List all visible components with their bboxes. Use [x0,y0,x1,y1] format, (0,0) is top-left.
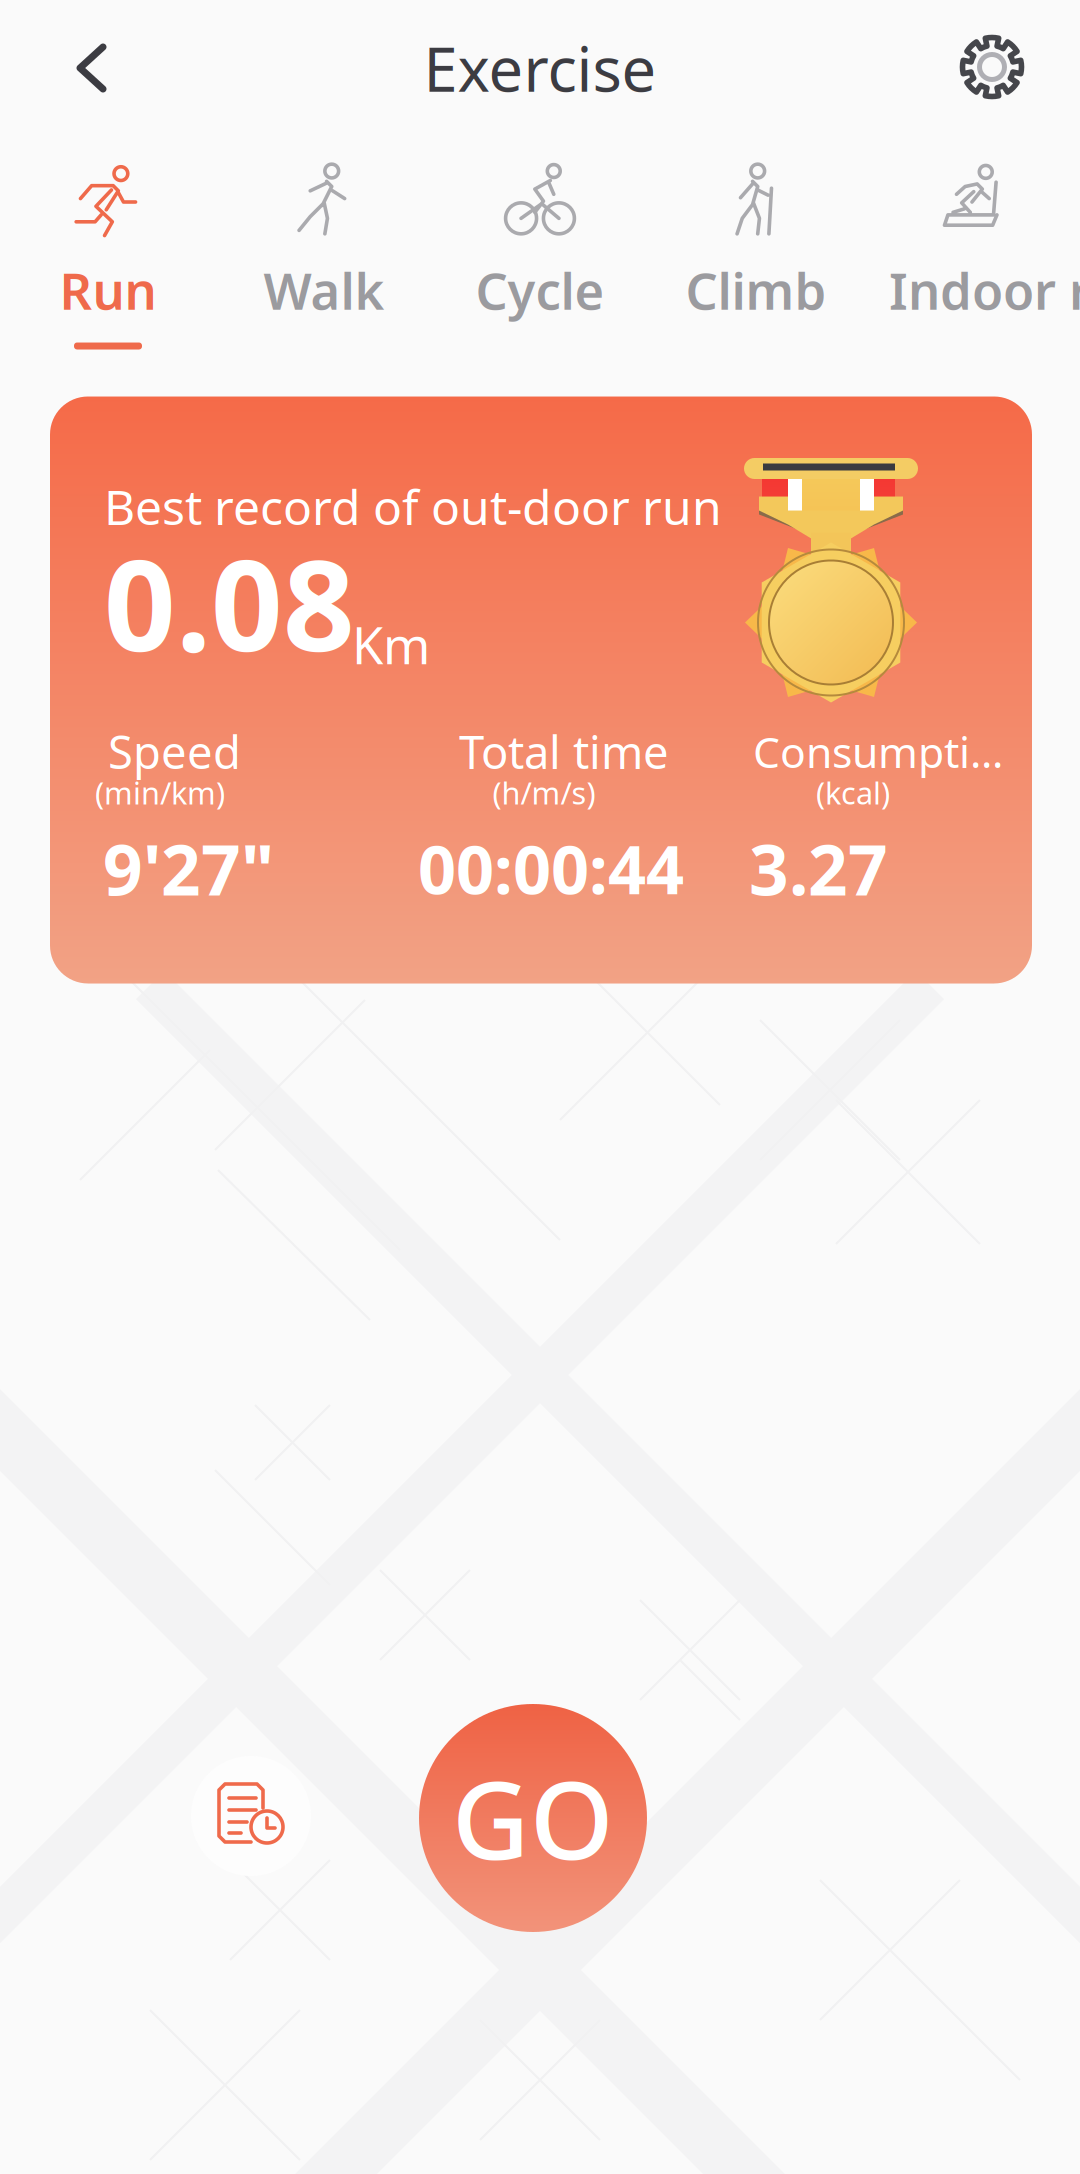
staticText: Km [352,611,430,678]
staticText: Total time [459,721,669,782]
button[interactable]: Back [37,13,147,123]
staticText: 3.27 [749,822,888,915]
button[interactable]: Indoor running [864,140,1080,352]
staticText: (kcal) [816,772,890,813]
button[interactable]: History [191,1756,311,1876]
button[interactable]: Walk [216,140,432,352]
button[interactable]: GO [419,1704,647,1932]
staticText: Indoor running [889,256,1080,324]
staticText: Cycle [475,256,604,324]
staticText: 0.08 [104,519,355,686]
staticText: (min/km) [95,772,225,813]
staticText: Exercise [423,27,656,109]
staticText: Climb [685,256,826,324]
staticText: Speed [108,721,241,782]
staticText: Best record of out-door run [104,475,722,538]
staticText: Consumpti... [753,723,1003,780]
staticText: 9'27" [103,822,274,915]
staticText: GO [452,1747,614,1889]
button[interactable]: Settings [937,12,1047,122]
button[interactable]: Climb [648,140,864,352]
staticText: (h/m/s) [492,772,595,813]
staticText: Walk [263,256,384,324]
staticText: 00:00:44 [418,824,684,913]
button[interactable]: Cycle [432,140,648,352]
staticText: Run [59,256,156,324]
button[interactable]: Run [0,140,216,352]
